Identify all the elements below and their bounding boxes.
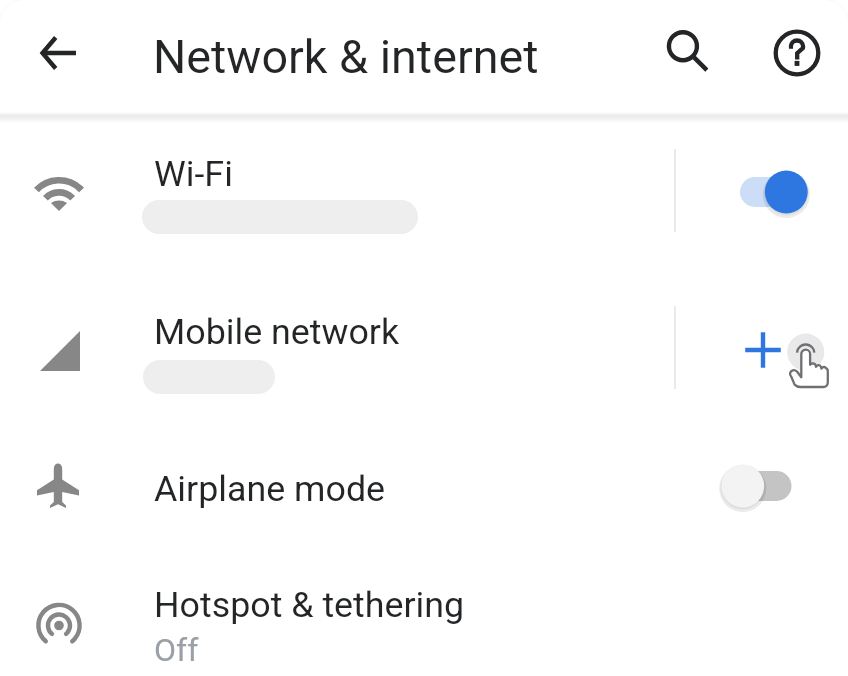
button[interactable]: Mobile network [0,288,848,444]
staticText: Airplane mode [154,468,386,510]
button[interactable]: Search [654,19,722,87]
button[interactable]: Turn on [712,460,804,512]
button[interactable]: Airplane mode [0,446,848,568]
button[interactable]: Help [763,19,831,87]
staticText: Hotspot & tethering [154,584,465,626]
staticText: Network & internet [153,30,539,85]
button[interactable]: Wi-Fi [0,130,848,286]
staticText: Mobile network [154,311,400,353]
staticText: Wi-Fi [154,153,233,195]
button[interactable]: Add network [741,328,785,372]
button[interactable]: Turn off [728,166,820,218]
button[interactable]: Navigate up [24,19,92,87]
staticText: Off [154,631,199,669]
button[interactable]: Hotspot & tethering [0,568,848,676]
